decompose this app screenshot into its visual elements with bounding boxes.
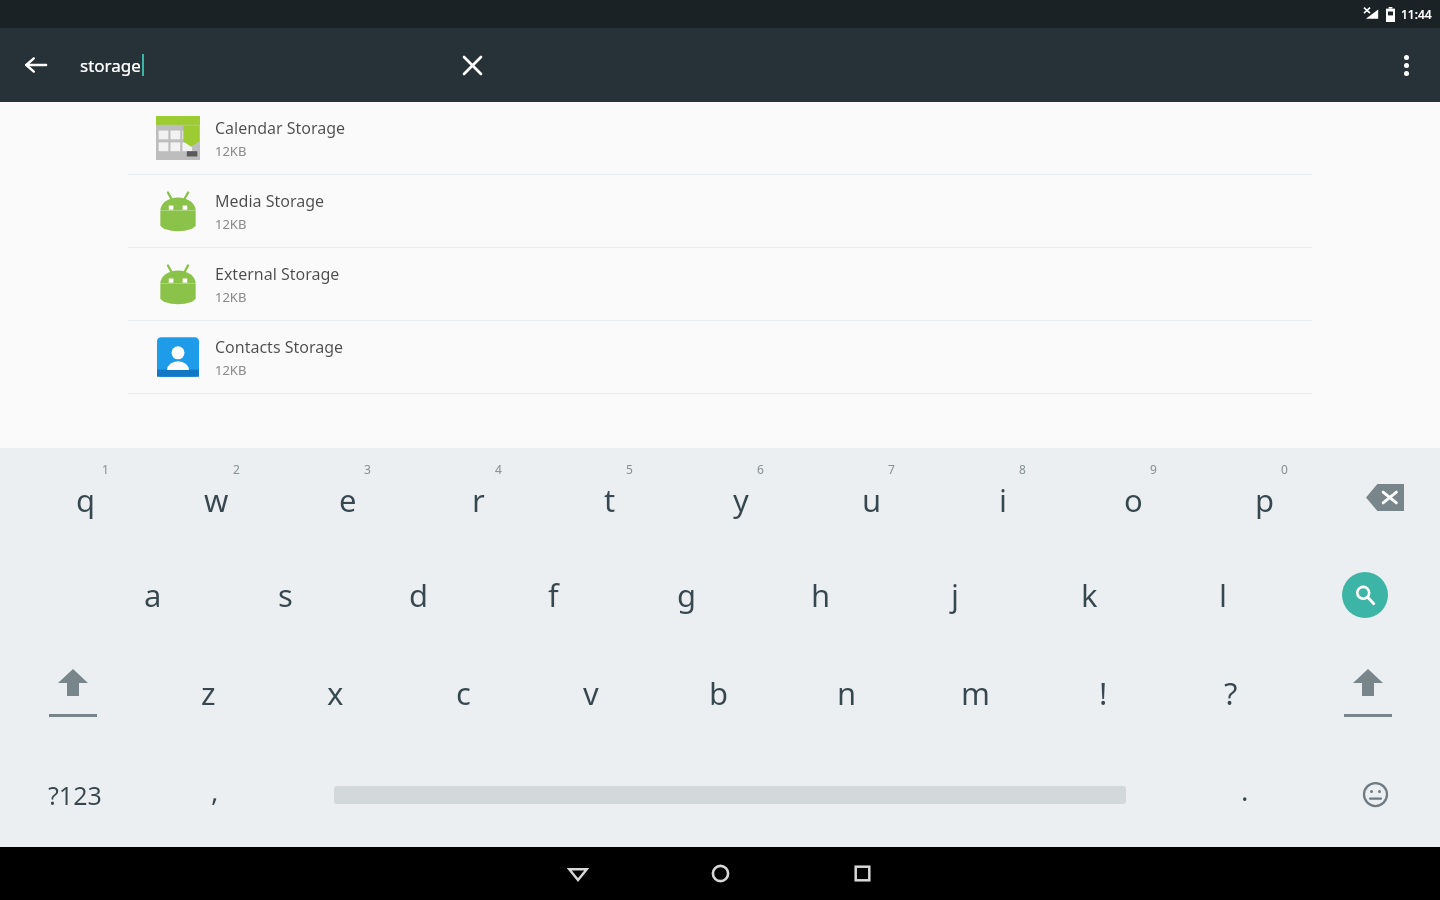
button[interactable]: l [1156, 546, 1290, 644]
staticText: 12KB [215, 215, 247, 233]
staticText: h [811, 574, 831, 616]
button[interactable]: v [527, 644, 655, 742]
button[interactable]: storage [80, 40, 144, 90]
staticText: q [76, 479, 96, 521]
button[interactable]: 8 [937, 448, 1068, 546]
button[interactable]: 2 [151, 448, 282, 546]
staticText: p [1255, 479, 1275, 521]
button[interactable]: Recent apps [797, 847, 927, 900]
button[interactable]: k [1022, 546, 1156, 644]
staticText: a [144, 574, 162, 616]
button[interactable]: 9 [1068, 448, 1199, 546]
button[interactable]: Media Storage [0, 175, 1440, 247]
button[interactable]: ! [1039, 644, 1167, 742]
staticText: f [548, 574, 559, 616]
button[interactable]: 0 [1199, 448, 1330, 546]
staticText: w [204, 479, 229, 521]
button[interactable]: n [783, 644, 911, 742]
staticText: u [862, 479, 882, 521]
button[interactable]: j [888, 546, 1022, 644]
button[interactable]: Search [1290, 546, 1440, 644]
button[interactable]: 6 [675, 448, 806, 546]
button[interactable]: , [150, 742, 280, 847]
button[interactable]: Home [655, 847, 785, 900]
staticText: d [409, 574, 429, 616]
staticText: 2 [233, 461, 240, 477]
button[interactable]: x [272, 644, 399, 742]
staticText: storage [80, 54, 141, 77]
button[interactable]: Backspace [1330, 448, 1440, 546]
staticText: . [1241, 771, 1249, 809]
button[interactable]: h [754, 546, 888, 644]
staticText: l [1219, 574, 1227, 616]
staticText: 12KB [215, 142, 247, 160]
button[interactable]: z [145, 644, 272, 742]
button[interactable]: ?123 [0, 742, 150, 847]
button[interactable]: 4 [413, 448, 544, 546]
staticText: Media Storage [215, 190, 325, 212]
button[interactable]: s [219, 546, 352, 644]
button[interactable]: 7 [806, 448, 937, 546]
staticText: z [201, 672, 216, 714]
staticText: 1 [102, 461, 109, 477]
button[interactable]: g [620, 546, 754, 644]
staticText: 5 [626, 461, 633, 477]
staticText: 12KB [215, 361, 247, 379]
staticText: n [837, 672, 857, 714]
staticText: c [456, 672, 471, 714]
staticText: ? [1224, 672, 1238, 714]
staticText: r [472, 479, 485, 521]
button[interactable]: Shift [0, 644, 145, 742]
staticText: g [677, 574, 697, 616]
staticText: o [1124, 479, 1143, 521]
button[interactable]: More options [1382, 41, 1430, 89]
staticText: y [733, 479, 749, 521]
button[interactable]: m [911, 644, 1039, 742]
staticText: 6 [757, 461, 764, 477]
button[interactable]: External Storage [0, 248, 1440, 320]
staticText: 7 [888, 461, 895, 477]
button[interactable]: Calendar Storage [0, 102, 1440, 174]
staticText: s [278, 574, 293, 616]
button[interactable]: Shift [1295, 644, 1440, 742]
button[interactable]: 1 [20, 448, 151, 546]
staticText: ! [1099, 672, 1108, 714]
staticText: k [1081, 574, 1098, 616]
button[interactable]: d [352, 546, 486, 644]
staticText: 11:44 [1401, 6, 1432, 22]
staticText: i [999, 479, 1007, 521]
staticText: External Storage [215, 263, 340, 285]
button[interactable]: Emoji [1310, 742, 1440, 847]
staticText: m [961, 672, 990, 714]
button[interactable]: Back [513, 847, 643, 900]
button[interactable]: Clear search [448, 41, 496, 89]
staticText: 12KB [215, 288, 247, 306]
staticText: b [709, 672, 729, 714]
staticText: ?123 [48, 778, 102, 812]
staticText: 9 [1150, 461, 1157, 477]
staticText: 0 [1281, 461, 1288, 477]
staticText: t [604, 479, 616, 521]
button[interactable]: Back [12, 41, 60, 89]
button[interactable]: b [655, 644, 783, 742]
button[interactable]: 3 [282, 448, 413, 546]
button[interactable]: ? [1167, 644, 1295, 742]
staticText: x [327, 672, 344, 714]
staticText: , [211, 771, 219, 809]
button[interactable]: f [486, 546, 620, 644]
staticText: j [951, 574, 959, 616]
staticText: e [339, 479, 357, 521]
staticText: Contacts Storage [215, 336, 344, 358]
staticText: 3 [364, 461, 371, 477]
button[interactable]: . [1180, 742, 1310, 847]
staticText: v [583, 672, 599, 714]
button[interactable]: Space [280, 742, 1180, 847]
button[interactable]: 5 [544, 448, 675, 546]
staticText: 4 [495, 461, 502, 477]
staticText: Calendar Storage [215, 117, 346, 139]
button[interactable]: a [86, 546, 219, 644]
button[interactable]: c [399, 644, 527, 742]
staticText: 8 [1019, 461, 1026, 477]
button[interactable]: Contacts Storage [0, 321, 1440, 393]
